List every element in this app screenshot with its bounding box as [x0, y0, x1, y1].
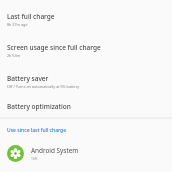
button[interactable]: Android System: [0, 139, 172, 167]
button[interactable]: Last full charge: [0, 8, 172, 39]
staticText: Last full charge: [7, 12, 55, 21]
staticText: 16%: [31, 156, 38, 160]
staticText: Off / Turns on automatically at 5% batte…: [7, 84, 80, 89]
staticText: Use since last full charge: [7, 127, 67, 134]
staticText: Screen usage since full charge: [7, 43, 101, 52]
button[interactable]: Use since last full charge: [0, 119, 172, 139]
staticText: Battery optimization: [7, 102, 71, 111]
staticText: 8h 37m ago: [7, 22, 28, 27]
button[interactable]: Screen usage since full charge: [0, 39, 172, 70]
staticText: Android System: [31, 146, 79, 155]
staticText: 2h 53m: [7, 53, 21, 58]
button[interactable]: Battery optimization: [0, 100, 172, 118]
staticText: Battery saver: [7, 74, 49, 83]
button[interactable]: Battery saver: [0, 70, 172, 100]
